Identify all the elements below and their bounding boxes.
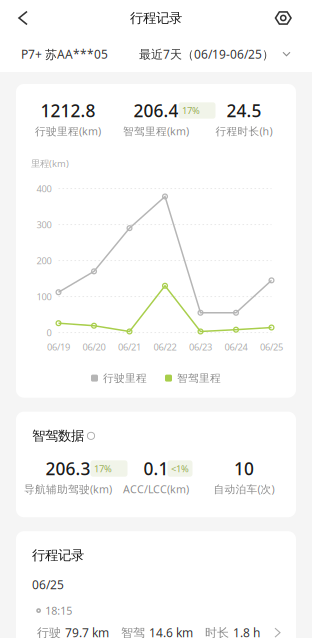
staticText: 智驾数据 [32,428,84,444]
staticText: 06/23 [189,341,212,353]
staticText: 17% [182,104,212,117]
staticText: 06/20 [82,341,105,353]
staticText: 0 [46,326,51,339]
staticText: 18:15 [45,603,72,618]
staticText: 200 [36,254,51,267]
staticText: 1.8 h [233,625,260,638]
staticText: 06/19 [47,341,70,353]
staticText: <1% [171,462,189,475]
staticText: 行驶里程 [103,372,147,385]
staticText: 06/25 [260,341,283,353]
staticText: 10 [234,457,254,480]
staticText: 400 [36,182,51,195]
staticText: 行程记录 [32,547,84,564]
staticText: P7+ 苏AA***05 [21,46,108,62]
staticText: 智驾里程(km) [123,124,189,138]
staticText: 导航辅助驾驶(km) [24,482,112,496]
staticText: 智驾 [109,625,149,638]
staticText: 79.7 km [65,625,109,638]
staticText: 06/22 [153,341,176,353]
staticText: 1212.8 [40,99,95,122]
staticText: 自动泊车(次) [213,482,274,496]
staticText: 智驾里程 [177,372,221,385]
staticText: 100 [36,290,51,303]
button[interactable]: 最近7天（06/19-06/25） [139,46,290,62]
staticText: 0.1 [143,457,168,480]
staticText: 最近7天（06/19-06/25） [139,46,274,62]
staticText: 行程时长(h) [215,124,272,138]
staticText: 行驶 [37,625,65,638]
staticText: 206.3 [45,457,90,480]
button[interactable]: 18:15 [16,592,296,638]
staticText: 206.4 [133,99,178,122]
staticText: 行程记录 [130,10,182,26]
staticText: 行驶里程(km) [35,124,101,138]
staticText: 里程(km) [31,157,69,170]
button[interactable]: Back [0,3,37,32]
staticText: 24.5 [226,99,261,122]
staticText: 14.6 km [149,625,193,638]
staticText: 300 [36,218,51,231]
staticText: ACC/LCC(km) [123,482,189,496]
staticText: 06/24 [224,341,247,353]
staticText: 06/25 [32,577,64,592]
button[interactable]: Settings [265,3,312,33]
staticText: 06/21 [118,341,141,353]
staticText: 时长 [193,625,233,638]
button[interactable]: P7+ 苏AA***05 [21,46,108,62]
staticText: 17% [94,462,124,475]
